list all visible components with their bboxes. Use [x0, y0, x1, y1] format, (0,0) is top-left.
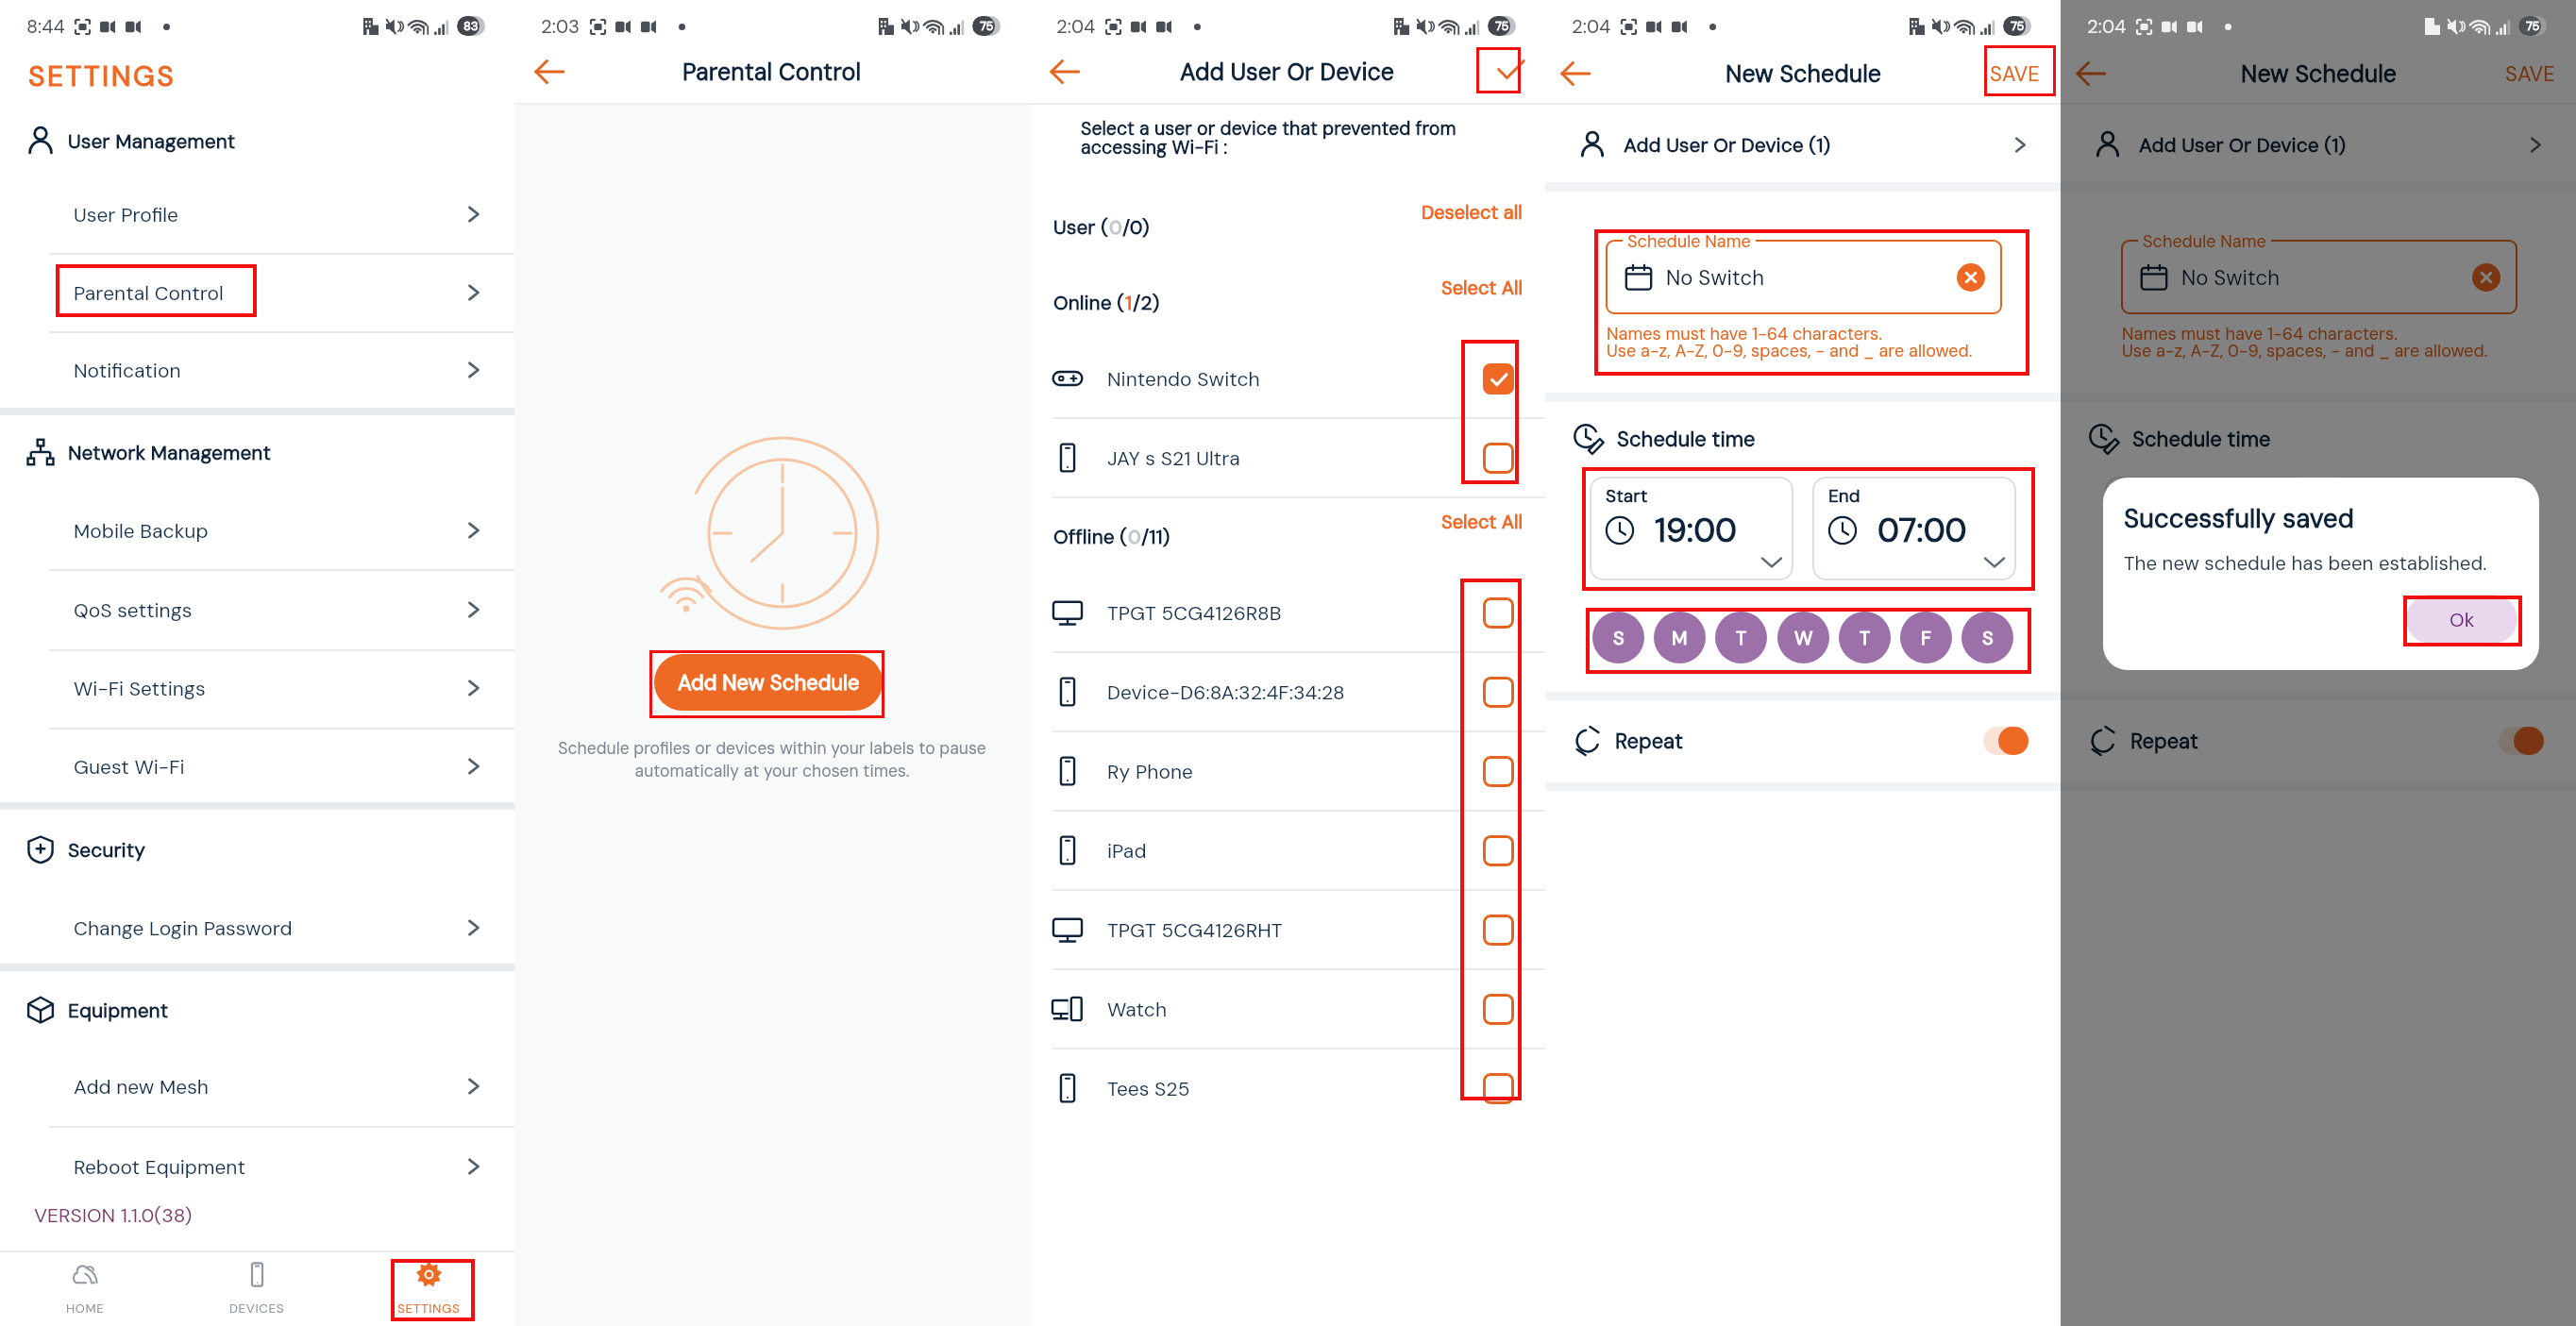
staticText: S — [1982, 626, 1994, 650]
button[interactable]: Parental Control — [0, 254, 514, 331]
button[interactable]: T — [1839, 612, 1891, 663]
button[interactable]: No Switch — [1606, 240, 2002, 314]
button[interactable]: Select All — [1441, 276, 1523, 300]
button[interactable]: Back — [2061, 47, 2121, 100]
button[interactable]: SAVE — [2505, 60, 2555, 88]
button[interactable]: Select TPGT 5CG4126R8B — [1483, 597, 1514, 629]
button[interactable]: Select Watch — [1483, 994, 1514, 1025]
button[interactable]: Back — [1545, 47, 1606, 100]
staticText: HOME — [66, 1301, 105, 1318]
button[interactable]: Select TPGT 5CG4126RHT — [1483, 915, 1514, 946]
staticText: TPGT 5CG4126R8B — [1107, 600, 1282, 626]
button[interactable]: T — [1715, 612, 1767, 663]
button[interactable]: Select Device-D6:8A:32:4F:34:28 — [1483, 677, 1514, 708]
button[interactable]: Add User Or Device (1) — [1545, 106, 2061, 183]
staticText: S — [2498, 626, 2509, 650]
button[interactable]: QoS settings — [0, 571, 514, 648]
button[interactable]: Confirm — [1477, 45, 1545, 98]
button[interactable]: No Switch — [2121, 240, 2517, 314]
button[interactable]: F — [1900, 612, 1952, 663]
button[interactable]: Watch — [1030, 970, 1545, 1048]
staticText: Online ( — [1053, 290, 1125, 315]
button[interactable]: Repeat toggle — [2499, 727, 2544, 755]
button[interactable]: Clear — [1957, 263, 1985, 292]
staticText: Schedule time — [2132, 426, 2271, 453]
button[interactable]: S — [2108, 612, 2160, 663]
staticText: W — [1794, 626, 1813, 650]
button[interactable]: Select Ry Phone — [1483, 756, 1514, 787]
button[interactable]: Add User Or Device (1) — [2061, 106, 2576, 183]
staticText: Nintendo Switch — [1107, 366, 1260, 392]
button[interactable]: S — [2477, 612, 2529, 663]
button[interactable]: Notification — [0, 331, 514, 409]
button[interactable]: End — [1812, 477, 2016, 580]
button[interactable]: Start — [2105, 477, 2309, 580]
staticText: Successfully saved — [2124, 502, 2354, 536]
staticText: Deselect all — [1422, 200, 1523, 225]
button[interactable]: Select iPad — [1483, 835, 1514, 866]
button[interactable]: Repeat toggle — [1983, 727, 2029, 755]
button[interactable]: Ry Phone — [1030, 732, 1545, 810]
button[interactable]: TPGT 5CG4126R8B — [1030, 574, 1545, 651]
button[interactable]: User Profile — [0, 176, 514, 253]
button[interactable]: Tees S25 — [1030, 1049, 1545, 1127]
staticText: JAY s S21 Ultra — [1107, 445, 1240, 471]
button[interactable]: Select JAY s S21 Ultra — [1483, 443, 1514, 474]
button[interactable]: Add New Schedule — [654, 654, 883, 711]
button[interactable]: S — [1592, 612, 1644, 663]
staticText: iPad — [1107, 838, 1147, 864]
button[interactable]: Reboot Equipment — [0, 1128, 514, 1205]
button[interactable]: Back — [1030, 45, 1100, 98]
staticText: Tees S25 — [1107, 1076, 1190, 1101]
button[interactable]: Add new Mesh — [0, 1048, 514, 1125]
staticText: Schedule time — [1617, 426, 1756, 453]
staticText: Reboot Equipment — [74, 1154, 245, 1180]
staticText: Security — [68, 837, 145, 863]
staticText: SETTINGS — [397, 1301, 461, 1318]
button[interactable]: Guest Wi-Fi — [0, 728, 514, 805]
button[interactable]: Select All — [1441, 510, 1523, 534]
staticText: S — [1613, 626, 1625, 650]
button[interactable]: Nintendo Switch — [1030, 340, 1545, 417]
button[interactable]: W — [1777, 612, 1829, 663]
button[interactable]: M — [1654, 612, 1706, 663]
button[interactable]: S — [1961, 612, 2013, 663]
button[interactable]: Wi-Fi Settings — [0, 649, 514, 727]
button[interactable]: Select Nintendo Switch — [1483, 363, 1514, 394]
staticText: Start — [1606, 484, 1648, 508]
button[interactable]: End — [2328, 477, 2532, 580]
staticText: Guest Wi-Fi — [74, 754, 185, 780]
button[interactable]: Mobile Backup — [0, 492, 514, 569]
staticText: Repeat — [2130, 728, 2198, 755]
staticText: Change Login Password — [74, 915, 293, 941]
button[interactable]: Select Tees S25 — [1483, 1073, 1514, 1104]
button[interactable]: JAY s S21 Ultra — [1030, 419, 1545, 496]
button[interactable]: iPad — [1030, 812, 1545, 889]
button[interactable]: SAVE — [1990, 60, 2040, 88]
staticText: 19:00 — [1655, 509, 1738, 552]
button[interactable]: Back — [514, 45, 584, 98]
staticText: Ry Phone — [1107, 759, 1193, 784]
button[interactable]: F — [2416, 612, 2467, 663]
button[interactable]: Change Login Password — [0, 889, 514, 966]
staticText: 2:04 — [1056, 14, 1096, 39]
button[interactable]: SETTINGS — [343, 1252, 514, 1326]
button[interactable]: Deselect all — [1422, 200, 1523, 225]
button[interactable]: DEVICES — [171, 1252, 343, 1326]
button[interactable]: T — [2354, 612, 2406, 663]
button[interactable]: Clear — [2472, 263, 2500, 292]
button[interactable]: Start — [1590, 477, 1793, 580]
staticText: Names must have 1-64 characters. Use a-z… — [1607, 323, 1973, 362]
button[interactable]: Device-D6:8A:32:4F:34:28 — [1030, 653, 1545, 730]
staticText: Wi-Fi Settings — [74, 676, 206, 701]
button[interactable]: Ok — [2406, 595, 2517, 644]
button[interactable]: TPGT 5CG4126RHT — [1030, 891, 1545, 968]
button[interactable]: HOME — [0, 1252, 171, 1326]
